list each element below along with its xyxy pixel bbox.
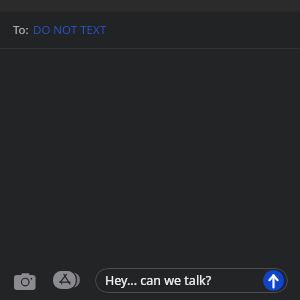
button[interactable]: To: [0,12,300,48]
button[interactable]: Send [263,270,284,291]
staticText: DO NOT TEXT [33,22,107,38]
button[interactable]: Hey... can we talk? [95,268,288,293]
button[interactable]: Apps [53,266,83,294]
staticText: Hey... can we talk? [105,272,212,289]
staticText: To: [13,22,29,38]
button[interactable]: Camera [9,268,39,295]
